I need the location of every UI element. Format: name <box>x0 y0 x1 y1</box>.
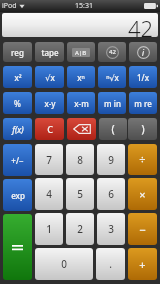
staticText: . <box>109 257 112 271</box>
staticText: exp <box>11 190 25 201</box>
staticText: 1 <box>46 222 52 236</box>
staticText: ( <box>111 122 115 136</box>
button[interactable]: 5 <box>66 178 94 210</box>
button[interactable]: . <box>96 248 125 280</box>
staticText: − <box>139 222 146 237</box>
button[interactable]: +/− <box>3 144 32 176</box>
button[interactable]: 1/x <box>129 66 157 88</box>
staticText: 8 <box>77 153 83 167</box>
staticText: ) <box>141 122 145 136</box>
button[interactable]: reg <box>3 42 32 62</box>
button[interactable]: % <box>3 92 32 114</box>
button[interactable]: m re <box>129 92 157 114</box>
staticText: 42 <box>109 48 116 56</box>
staticText: √x <box>45 72 55 83</box>
staticText: i <box>142 47 145 58</box>
button[interactable]: ) <box>128 118 157 140</box>
button[interactable]: C <box>35 118 64 140</box>
button[interactable]: xⁿ <box>67 66 95 88</box>
button[interactable]: 7 <box>35 144 63 175</box>
staticText: x-m <box>74 98 89 109</box>
staticText: 9 <box>108 153 114 167</box>
staticText: 1/x <box>137 72 149 83</box>
staticText: f(x) <box>12 124 24 135</box>
button[interactable]: exp <box>3 179 32 211</box>
staticText: 42 <box>128 13 154 37</box>
button[interactable]: Swap A and B <box>67 42 95 62</box>
staticText: × <box>139 187 146 202</box>
staticText: ⁿ√x <box>106 72 119 83</box>
staticText: xⁿ <box>77 72 85 83</box>
button[interactable]: f(x) <box>3 118 32 140</box>
staticText: 7 <box>46 153 52 167</box>
staticText: 6 <box>108 187 114 201</box>
button[interactable]: 0 <box>35 248 93 280</box>
staticText: 15:31 <box>75 1 93 11</box>
button[interactable]: 9 <box>97 144 125 175</box>
button[interactable]: m in <box>98 92 126 114</box>
button[interactable]: tape <box>35 42 64 62</box>
button[interactable]: Recall 42 <box>98 42 126 62</box>
button[interactable]: Equals <box>3 214 32 280</box>
button[interactable]: x² <box>3 66 32 88</box>
button[interactable]: √x <box>35 66 64 88</box>
staticText: % <box>14 98 21 109</box>
staticText: 5 <box>77 187 83 201</box>
staticText: 0 <box>61 257 67 271</box>
button[interactable]: 1 <box>35 213 63 245</box>
staticText: m re <box>134 98 152 109</box>
staticText: 2 <box>77 222 83 236</box>
button[interactable]: + <box>128 248 157 280</box>
button[interactable]: 6 <box>97 178 125 210</box>
button[interactable]: x-y <box>35 92 64 114</box>
button[interactable]: 2 <box>66 213 94 245</box>
button[interactable]: ( <box>99 118 127 140</box>
button[interactable]: 8 <box>66 144 94 175</box>
button[interactable]: Backspace <box>67 118 96 140</box>
button[interactable]: × <box>128 178 157 210</box>
staticText: x² <box>14 72 22 83</box>
staticText: C <box>47 123 53 135</box>
staticText: reg <box>11 47 24 58</box>
button[interactable]: 3 <box>97 213 125 245</box>
staticText: 4 <box>46 187 52 201</box>
staticText: ÷ <box>139 152 146 167</box>
button[interactable]: 4 <box>35 178 63 210</box>
button[interactable]: x-m <box>67 92 95 114</box>
button[interactable]: − <box>128 213 157 245</box>
staticText: iPod <box>2 1 17 11</box>
staticText: + <box>139 257 146 272</box>
button[interactable]: ÷ <box>128 144 157 175</box>
staticText: x-y <box>44 98 56 109</box>
button[interactable]: ⁿ√x <box>98 66 126 88</box>
staticText: A|B <box>75 49 87 57</box>
staticText: tape <box>41 47 59 58</box>
staticText: m in <box>104 98 121 109</box>
button[interactable]: Info <box>129 42 157 62</box>
staticText: 3 <box>108 222 114 236</box>
staticText: +/− <box>11 155 24 166</box>
